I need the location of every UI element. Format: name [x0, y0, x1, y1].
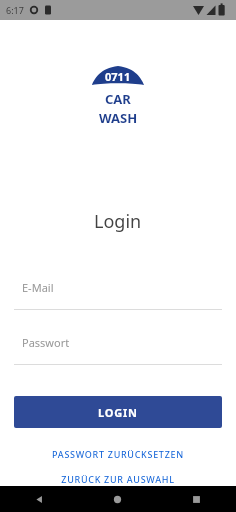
button[interactable]: Home — [78, 486, 157, 512]
staticText: 0711 — [105, 69, 131, 84]
staticText: CAR — [105, 90, 131, 108]
staticText: ZURÜCK ZUR AUSWAHL — [61, 473, 175, 485]
button[interactable]: LOGIN — [14, 396, 222, 428]
staticText: 6:17 — [6, 4, 24, 16]
staticText: Passwort — [22, 335, 70, 350]
staticText: LOGIN — [98, 405, 138, 420]
staticText: E-Mail — [22, 280, 54, 295]
button[interactable]: Passwort — [14, 329, 222, 365]
button[interactable]: ZURÜCK ZUR AUSWAHL — [0, 472, 236, 486]
staticText: Login — [94, 209, 142, 234]
staticText: WASH — [99, 109, 138, 127]
button[interactable]: PASSWORT ZURÜCKSETZEN — [0, 446, 236, 462]
button[interactable]: Recent apps — [157, 486, 236, 512]
button[interactable]: E-Mail — [14, 274, 222, 310]
button[interactable]: Back — [0, 486, 78, 512]
staticText: PASSWORT ZURÜCKSETZEN — [52, 448, 184, 460]
